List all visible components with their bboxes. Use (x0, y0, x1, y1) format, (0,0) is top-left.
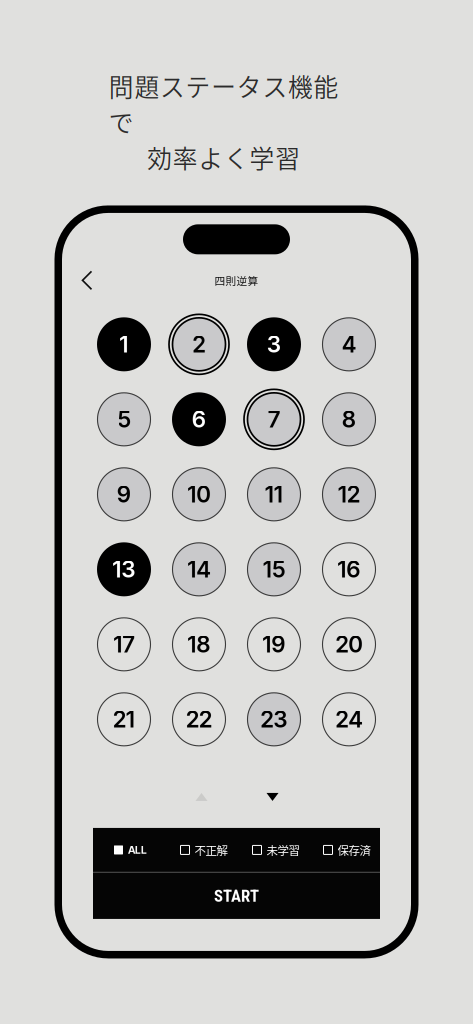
button[interactable]: Previous page (195, 793, 207, 801)
staticText: 17 (113, 631, 134, 658)
staticText: START (214, 886, 259, 906)
button[interactable]: 13 (97, 542, 151, 596)
button[interactable]: Next page (266, 793, 278, 801)
staticText: 3 (267, 331, 281, 358)
button[interactable]: 20 (322, 617, 376, 671)
staticText: 16 (337, 556, 360, 583)
button[interactable]: 19 (247, 617, 301, 671)
button[interactable]: 6 (172, 392, 226, 446)
button[interactable]: 15 (247, 542, 301, 596)
staticText: 10 (187, 481, 210, 508)
staticText: 13 (112, 556, 135, 583)
staticText: 23 (260, 706, 287, 733)
button[interactable]: 16 (322, 542, 376, 596)
button[interactable]: 17 (97, 617, 151, 671)
staticText: 8 (342, 406, 356, 433)
staticText: 四則逆算 (214, 273, 258, 288)
button[interactable]: START (93, 873, 380, 919)
button[interactable]: ALL (114, 843, 147, 856)
staticText: 24 (335, 706, 362, 733)
staticText: 11 (265, 481, 283, 508)
staticText: 問題ステータス機能で (109, 68, 339, 139)
staticText: 12 (338, 481, 360, 508)
button[interactable]: 1 (97, 317, 151, 371)
button[interactable]: 7 (247, 392, 301, 446)
staticText: 4 (342, 331, 356, 358)
staticText: 20 (335, 631, 362, 658)
button[interactable]: 未学習 (252, 842, 299, 858)
staticText: 14 (187, 556, 210, 583)
staticText: 19 (262, 631, 285, 658)
button[interactable]: 23 (247, 692, 301, 746)
button[interactable]: 22 (172, 692, 226, 746)
button[interactable]: 10 (172, 467, 226, 521)
button[interactable]: 不正解 (180, 842, 227, 858)
staticText: 保存済 (337, 842, 370, 858)
button[interactable]: 12 (322, 467, 376, 521)
staticText: 18 (187, 631, 210, 658)
staticText: 15 (263, 556, 285, 583)
button[interactable]: 4 (322, 317, 376, 371)
button[interactable]: 3 (247, 317, 301, 371)
staticText: ALL (128, 843, 147, 856)
staticText: 5 (117, 406, 130, 433)
staticText: 22 (186, 706, 212, 733)
button[interactable]: 9 (97, 467, 151, 521)
staticText: 6 (192, 406, 206, 433)
button[interactable]: 24 (322, 692, 376, 746)
button[interactable]: 5 (97, 392, 151, 446)
staticText: 効率よく学習 (147, 139, 300, 175)
staticText: 不正解 (194, 842, 227, 858)
button[interactable]: 11 (247, 467, 301, 521)
button[interactable]: 8 (322, 392, 376, 446)
staticText: 未学習 (266, 842, 299, 858)
button[interactable]: Back (80, 267, 96, 293)
staticText: 21 (113, 706, 135, 733)
staticText: 9 (117, 481, 131, 508)
button[interactable]: 14 (172, 542, 226, 596)
button[interactable]: 21 (97, 692, 151, 746)
staticText: 7 (268, 406, 280, 433)
staticText: 1 (119, 331, 128, 358)
button[interactable]: 2 (172, 317, 226, 371)
button[interactable]: 保存済 (323, 842, 370, 858)
button[interactable]: 18 (172, 617, 226, 671)
staticText: 2 (192, 331, 205, 358)
